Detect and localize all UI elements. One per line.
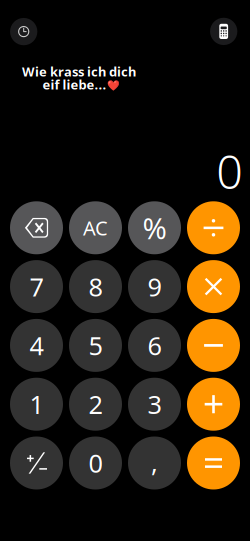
button[interactable]: 3 [128, 378, 181, 431]
button[interactable]: Divide [187, 201, 240, 254]
button[interactable]: 8 [69, 260, 122, 313]
staticText: eif liebe... [42, 76, 106, 93]
button[interactable]: Multiply [187, 260, 240, 313]
staticText: 4 [29, 329, 43, 362]
staticText: AC [83, 214, 108, 241]
staticText: 2 [88, 387, 102, 421]
staticText: 5 [88, 329, 102, 362]
button[interactable]: 6 [128, 319, 181, 372]
staticText: 8 [88, 270, 102, 303]
staticText: , [151, 446, 158, 479]
button[interactable]: Plus [187, 378, 240, 431]
staticText: 0 [216, 140, 243, 202]
button[interactable]: Delete [10, 201, 63, 254]
staticText: 7 [29, 270, 43, 303]
button[interactable]: 4 [10, 319, 63, 372]
staticText: 3 [147, 387, 161, 421]
button[interactable]: 0 [69, 436, 122, 489]
staticText: 9 [147, 270, 161, 303]
staticText: Wie krass ich dich [22, 63, 136, 80]
button[interactable]: , [128, 436, 181, 489]
staticText: 1 [29, 387, 43, 421]
staticText: 0 [88, 446, 102, 480]
staticText: 6 [147, 329, 161, 362]
button[interactable]: 9 [128, 260, 181, 313]
button[interactable]: Plus minus [10, 436, 63, 489]
button[interactable]: 7 [10, 260, 63, 313]
staticText: % [142, 208, 166, 247]
button[interactable]: 1 [10, 378, 63, 431]
button[interactable]: 5 [69, 319, 122, 372]
button[interactable]: Minus [187, 319, 240, 372]
staticText: ❤️ [106, 79, 119, 91]
button[interactable]: AC [69, 201, 122, 254]
button[interactable]: Calculator [210, 18, 237, 45]
button[interactable]: History [10, 18, 37, 45]
button[interactable]: 2 [69, 378, 122, 431]
button[interactable]: Equals [187, 436, 240, 489]
button[interactable]: % [128, 201, 181, 254]
